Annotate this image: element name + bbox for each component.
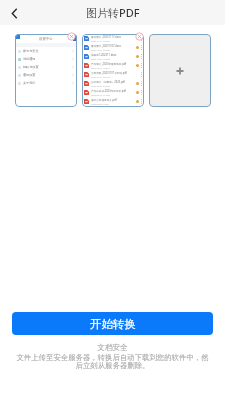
- staticText: 关于我们: [23, 81, 36, 85]
- staticText: 微信图片_20231117.docx: [91, 35, 121, 39]
- staticText: 2023-11-02 18.4KB: [91, 58, 110, 61]
- staticText: 项目公司项目简介.pdf: [91, 98, 117, 102]
- staticText: 采购单1-202311.docx: [91, 53, 117, 57]
- staticText: 产品简介_2023年最新版本.pdf: [91, 62, 127, 66]
- button[interactable]: 设置中心: [15, 34, 77, 107]
- staticText: 消息通知: [23, 57, 36, 61]
- staticText: 公司简介（完整版）2023.pdf: [91, 80, 126, 84]
- staticText: 开始转换: [90, 317, 136, 331]
- staticText: 微信图片_20231107.docx: [91, 44, 121, 48]
- staticText: 汇报资料_20231011合同书.pdf: [91, 71, 127, 75]
- staticText: 文件上传至安全服务器，转换后自动下载到您的软件中，然 后立刻从服务器删除。: [0, 353, 225, 370]
- staticText: 2023-10-11 88.1KB: [91, 76, 110, 79]
- staticText: 账号与安全: [23, 49, 39, 53]
- staticText: 通用设置: [23, 73, 36, 77]
- staticText: 文档安全: [0, 343, 225, 353]
- staticText: 设置中心: [39, 37, 53, 41]
- staticText: 2023-10-21 102KB: [91, 67, 110, 70]
- button[interactable]: Remove: [67, 32, 76, 41]
- staticText: 隐私与设置: [23, 65, 39, 69]
- staticText: 2023-09-18 31.9KB: [91, 94, 110, 97]
- staticText: 2023-10-02 42.6KB: [91, 85, 110, 88]
- staticText: 图片转PDF: [86, 5, 140, 20]
- staticText: 产品白皮书-2023年的技术.pdf: [91, 89, 126, 93]
- button[interactable]: 开始转换: [12, 312, 213, 335]
- staticText: 2023-11-07 20.8KB: [91, 49, 110, 52]
- button[interactable]: 微信图片_20231117.docx: [82, 34, 144, 107]
- button[interactable]: Add image: [149, 34, 211, 107]
- staticText: 2023-09-06 9.8KB: [91, 103, 109, 106]
- button[interactable]: Remove: [135, 32, 144, 41]
- staticText: 2023-11-17 13.2KB: [91, 40, 110, 43]
- button[interactable]: Back: [4, 3, 24, 23]
